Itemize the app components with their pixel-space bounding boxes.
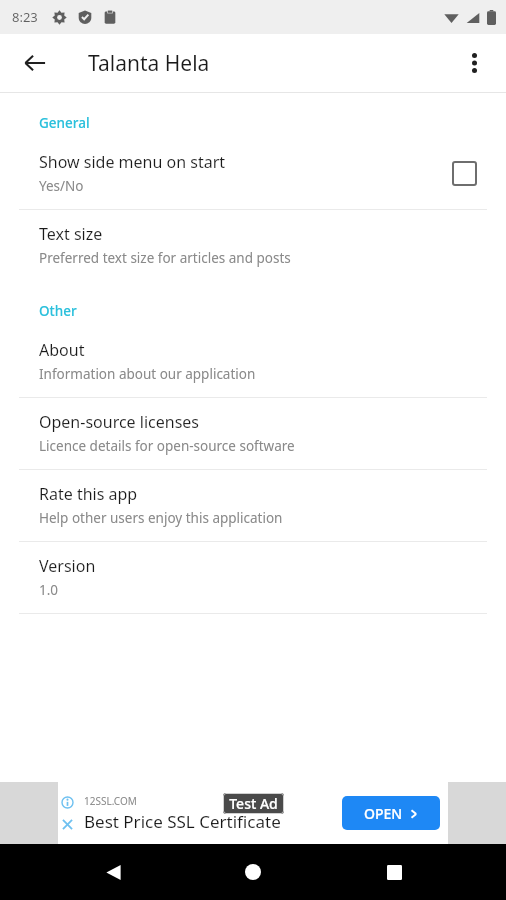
button[interactable]: Back bbox=[85, 844, 141, 900]
staticText: Preferred text size for articles and pos… bbox=[39, 249, 291, 267]
staticText: Best Price SSL Certificate bbox=[84, 810, 281, 833]
staticText: Other bbox=[39, 302, 77, 320]
staticText: Rate this app bbox=[39, 483, 138, 505]
staticText: 12SSL.COM bbox=[84, 794, 137, 808]
button[interactable]: Home bbox=[225, 844, 281, 900]
staticText: General bbox=[39, 114, 90, 132]
button[interactable]: Rate this app bbox=[0, 470, 506, 541]
button[interactable]: Show side menu on start toggle bbox=[444, 153, 484, 193]
staticText: Test Ad bbox=[229, 794, 278, 813]
button[interactable]: Open-source licenses bbox=[0, 398, 506, 469]
staticText: Version bbox=[39, 555, 96, 577]
staticText: OPEN bbox=[364, 804, 403, 823]
button[interactable]: More options bbox=[450, 39, 498, 87]
staticText: 8:23 bbox=[12, 8, 38, 26]
staticText: Yes/No bbox=[39, 177, 84, 195]
staticText: About bbox=[39, 339, 85, 361]
staticText: 1.0 bbox=[39, 581, 59, 599]
staticText: Licence details for open-source software bbox=[39, 437, 295, 455]
button[interactable]: Text size bbox=[0, 210, 506, 281]
staticText: Talanta Hela bbox=[88, 49, 210, 78]
button[interactable]: About bbox=[0, 326, 506, 397]
button[interactable]: Recent apps bbox=[366, 844, 422, 900]
button[interactable]: Show side menu on start bbox=[0, 138, 506, 209]
button[interactable]: 12SSL.COM bbox=[58, 782, 448, 844]
staticText: Help other users enjoy this application bbox=[39, 509, 283, 527]
staticText: Show side menu on start bbox=[39, 151, 226, 173]
staticText: Open-source licenses bbox=[39, 411, 199, 433]
button[interactable]: Back bbox=[11, 39, 59, 87]
button[interactable]: OPEN bbox=[342, 796, 440, 830]
staticText: Text size bbox=[39, 223, 103, 245]
button[interactable]: Version bbox=[0, 542, 506, 613]
staticText: Information about our application bbox=[39, 365, 256, 383]
